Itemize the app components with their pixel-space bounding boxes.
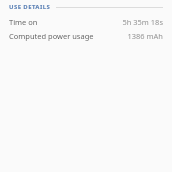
button[interactable]: Time on (0, 15, 172, 29)
staticText: USE DETAILS (9, 3, 51, 11)
staticText: 1386 mAh (127, 31, 163, 41)
button[interactable]: Computed power usage (0, 29, 172, 43)
staticText: 5h 35m 18s (122, 17, 163, 27)
staticText: Computed power usage (9, 31, 94, 41)
staticText: Time on (9, 17, 38, 27)
